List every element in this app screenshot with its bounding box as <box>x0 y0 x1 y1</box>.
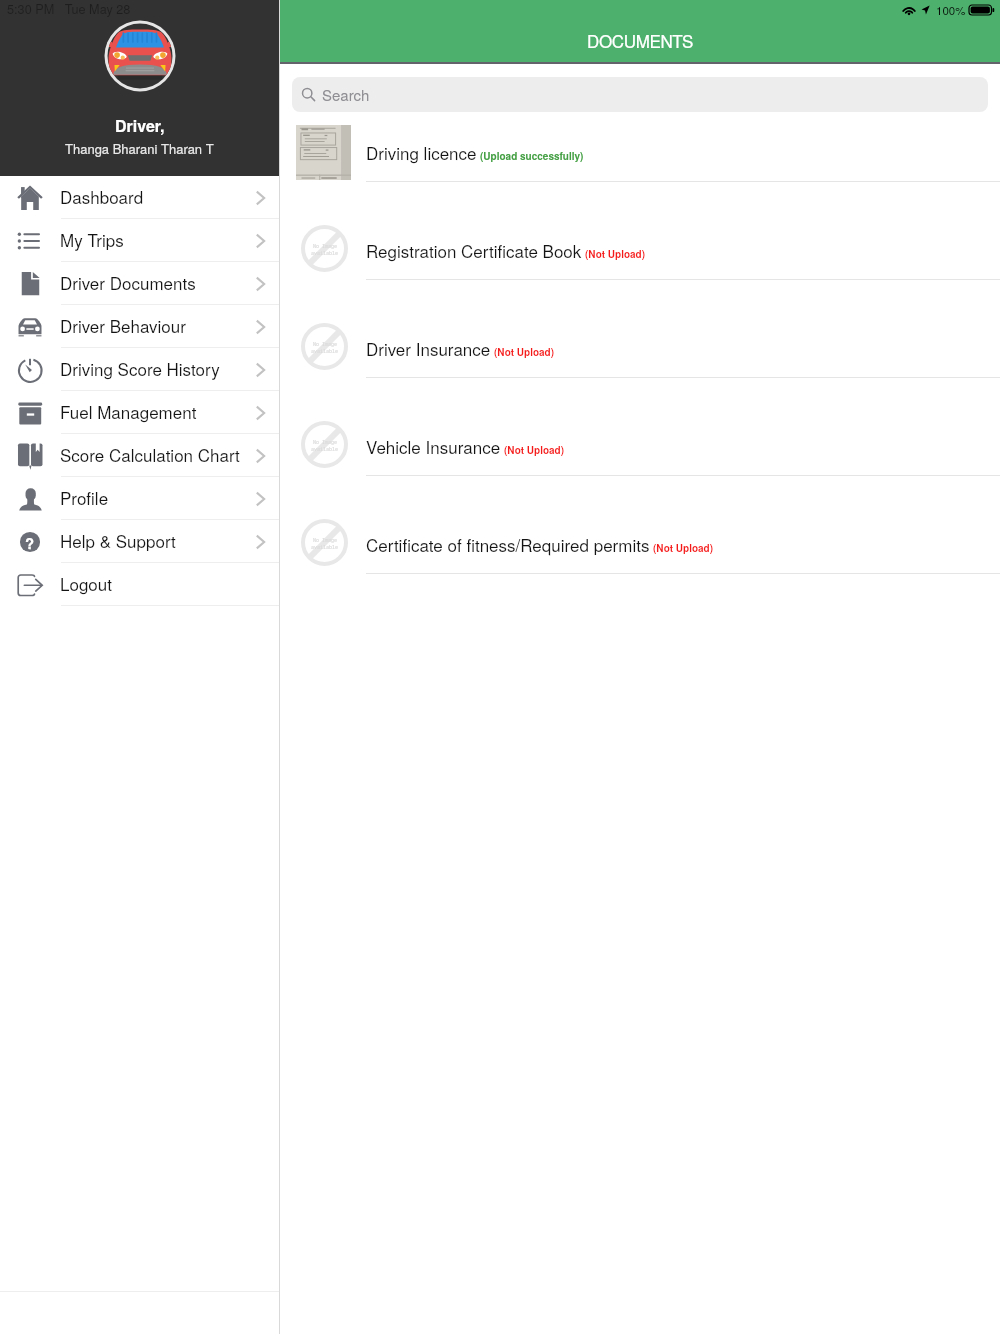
staticText: Certificate of fitness/Required permits <box>366 532 650 556</box>
staticText: Score Calculation Chart <box>60 442 240 466</box>
staticText: available <box>311 250 339 257</box>
staticText: (Not Upload) <box>585 247 646 261</box>
staticText: available <box>311 446 339 453</box>
staticText: (Upload successfully) <box>480 149 584 163</box>
button[interactable]: No Image <box>280 319 1000 417</box>
button[interactable]: Driving Score History <box>0 348 279 391</box>
staticText: Help & Support <box>60 528 176 552</box>
staticText: Vehicle Insurance <box>366 434 501 458</box>
staticText: available <box>311 544 339 551</box>
staticText: Thanga Bharani Tharan T <box>65 139 214 158</box>
staticText: Driver Behaviour <box>60 313 186 337</box>
staticText: Profile <box>60 485 109 509</box>
staticText: Driver, <box>115 114 165 137</box>
staticText: Search <box>322 84 370 105</box>
staticText: DOCUMENTS <box>587 28 693 52</box>
staticText: Driver Documents <box>60 270 196 294</box>
button[interactable]: Search documents <box>292 77 988 112</box>
staticText: available <box>311 348 339 355</box>
button[interactable]: My Trips <box>0 219 279 262</box>
staticText: Registration Certificate Book <box>366 238 582 262</box>
button[interactable]: Profile <box>0 477 279 520</box>
button[interactable]: ? <box>0 520 279 563</box>
button[interactable]: Fuel Management <box>0 391 279 434</box>
staticText: (Not Upload) <box>504 443 565 457</box>
staticText: Dashboard <box>60 184 144 208</box>
button[interactable]: No Image <box>280 221 1000 319</box>
staticText: 5:30 PM Tue May 28 <box>7 0 131 17</box>
staticText: Logout <box>60 571 112 595</box>
staticText: No Image <box>313 243 338 250</box>
staticText: Driver Insurance <box>366 336 491 360</box>
staticText: Driving licence <box>366 140 477 164</box>
button[interactable]: Driver Documents <box>0 262 279 305</box>
button[interactable]: No Image <box>280 515 1000 613</box>
staticText: No Image <box>313 439 338 446</box>
button[interactable]: Driver Behaviour <box>0 305 279 348</box>
staticText: No Image <box>313 341 338 348</box>
staticText: My Trips <box>60 227 124 251</box>
staticText: Fuel Management <box>60 399 197 423</box>
staticText: (Not Upload) <box>653 541 714 555</box>
staticText: Driving Score History <box>60 356 220 380</box>
staticText: No Image <box>313 537 338 544</box>
staticText: 100% <box>936 2 966 18</box>
button[interactable]: Logout <box>0 563 279 606</box>
button[interactable]: No Image <box>280 417 1000 515</box>
staticText: ? <box>25 532 35 553</box>
button[interactable]: Dashboard <box>0 176 279 219</box>
button[interactable]: Driving licence <box>280 123 1000 221</box>
staticText: (Not Upload) <box>494 345 555 359</box>
button[interactable]: Score Calculation Chart <box>0 434 279 477</box>
